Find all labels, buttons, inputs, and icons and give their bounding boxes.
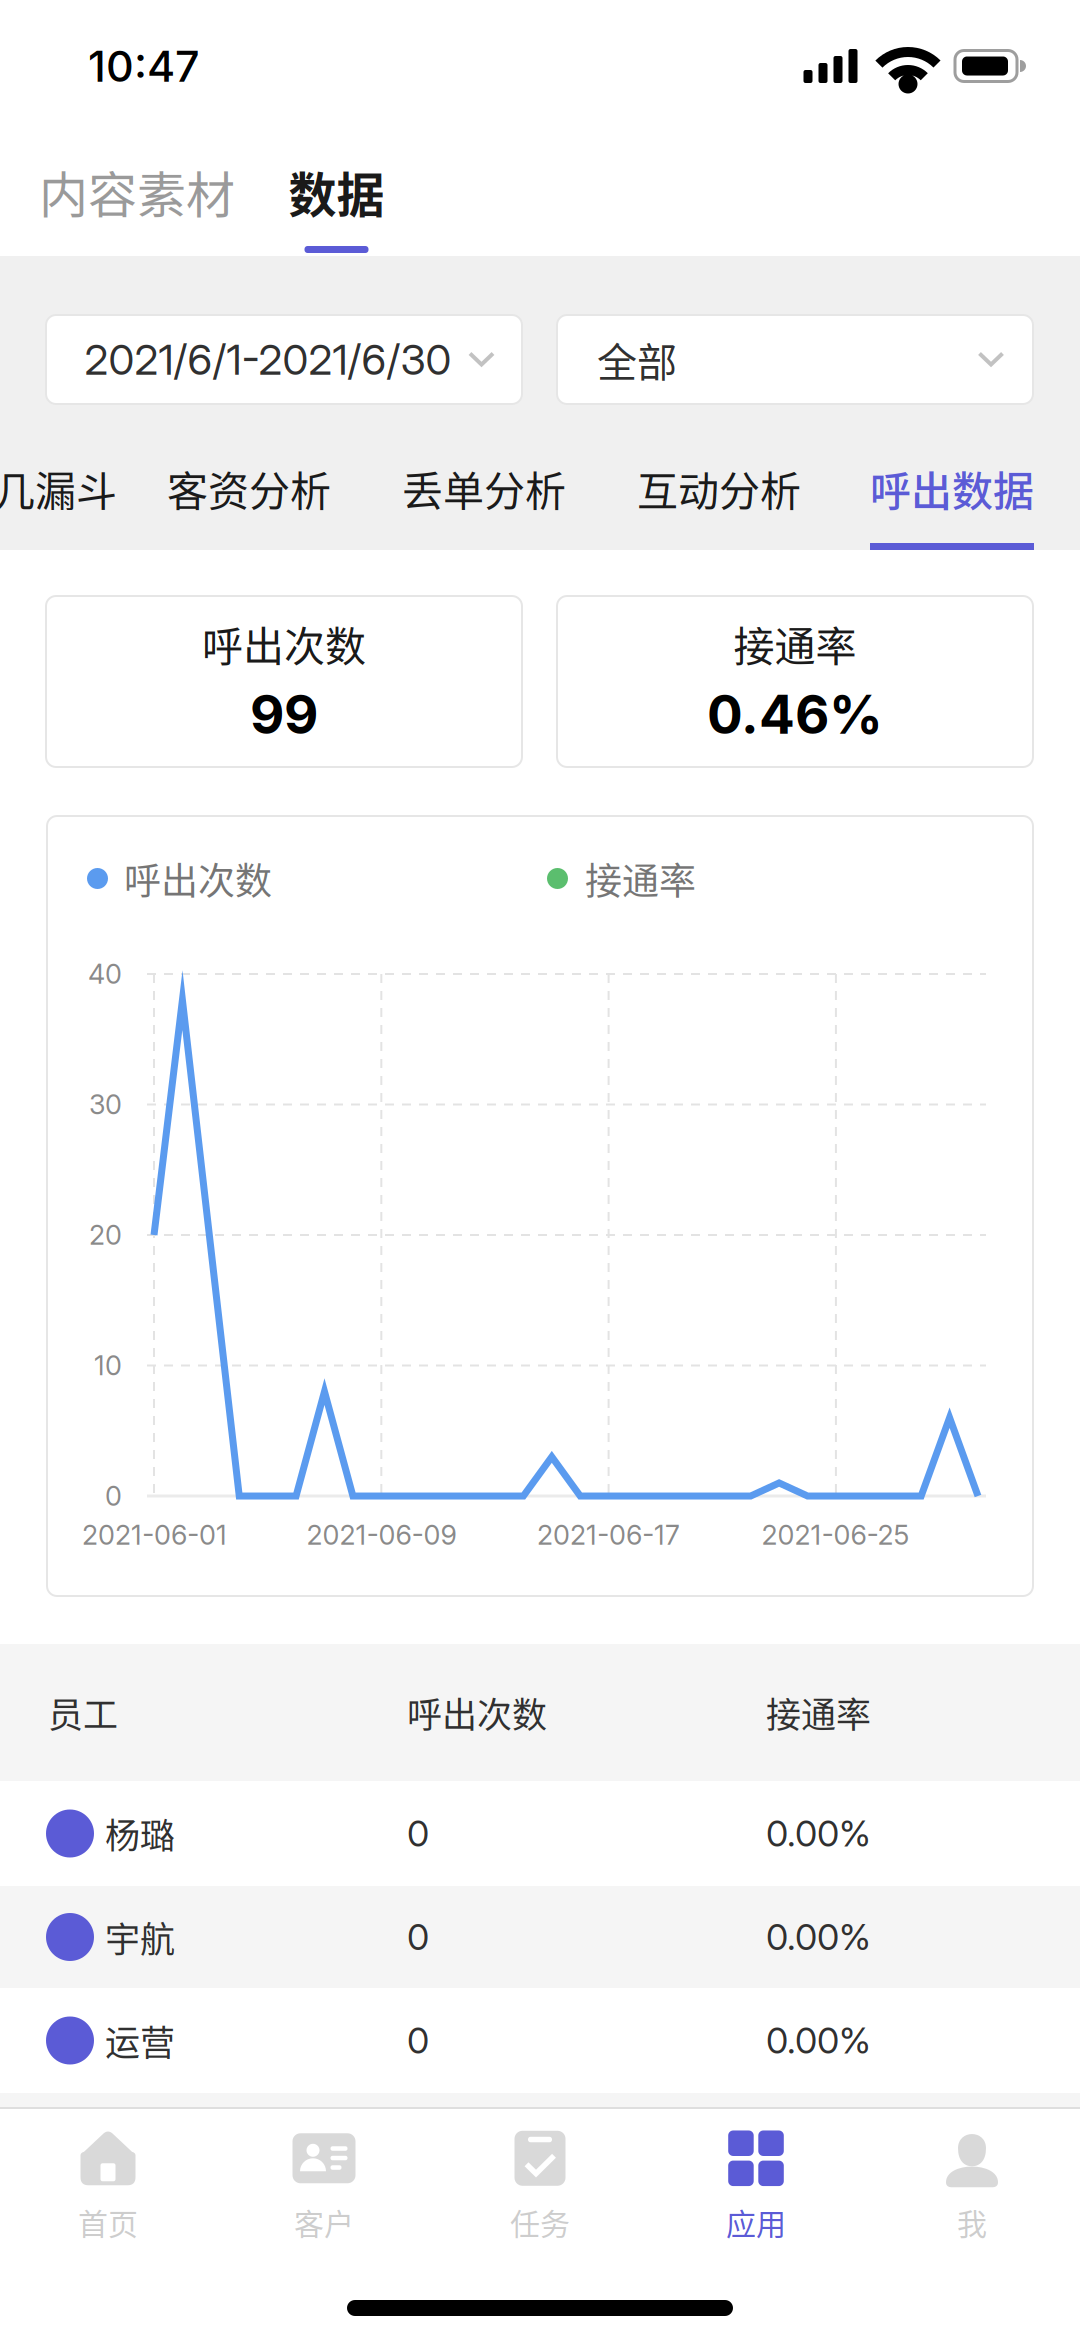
button[interactable]: 互动分析 xyxy=(0,440,164,550)
staticText: 我 xyxy=(957,2200,987,2244)
staticText: 0.00% xyxy=(766,1915,871,1959)
staticText: 客户 xyxy=(294,2200,354,2244)
button[interactable]: 2021/6/1-2021/6/30 xyxy=(46,315,522,404)
button[interactable]: 数据 xyxy=(289,132,384,251)
staticText: 呼出次数 xyxy=(124,852,272,905)
staticText: 2021-06-25 xyxy=(761,1519,909,1551)
button[interactable]: 杨璐 xyxy=(0,1781,1080,1886)
staticText: 几漏斗 xyxy=(0,459,117,518)
staticText: 呼出数据 xyxy=(870,459,1034,518)
staticText: 杨璐 xyxy=(105,1808,175,1859)
button[interactable]: 首页 xyxy=(0,2109,216,2240)
staticText: 数据 xyxy=(288,157,384,226)
button[interactable]: 客资分析 xyxy=(0,440,164,550)
staticText: 互动分析 xyxy=(637,459,801,518)
button[interactable]: 宇航 xyxy=(0,1886,1080,1988)
staticText: 0.00% xyxy=(766,2019,871,2062)
staticText: 运营 xyxy=(105,2015,175,2066)
staticText: 2021-06-01 xyxy=(82,1519,227,1551)
button[interactable]: 我 xyxy=(864,2109,1080,2240)
button[interactable]: 客户 xyxy=(216,2109,432,2240)
staticText: 2021-06-17 xyxy=(537,1519,680,1551)
staticText: 接通率 xyxy=(585,852,696,905)
staticText: 10:47 xyxy=(88,40,200,92)
staticText: 0 xyxy=(105,1480,122,1512)
staticText: 呼出次数 xyxy=(202,614,366,673)
staticText: 2021/6/1-2021/6/30 xyxy=(84,334,451,385)
staticText: 员工 xyxy=(48,1687,118,1738)
staticText: 20 xyxy=(89,1219,122,1251)
staticText: 呼出次数 xyxy=(407,1687,547,1738)
staticText: 接通率 xyxy=(766,1687,871,1738)
staticText: 0.00% xyxy=(766,1812,871,1855)
staticText: 客资分析 xyxy=(167,459,331,518)
staticText: 应用 xyxy=(726,2200,786,2244)
staticText: 全部 xyxy=(597,330,677,388)
staticText: 丢单分析 xyxy=(402,459,566,518)
button[interactable]: 任务 xyxy=(432,2109,648,2240)
staticText: 任务 xyxy=(510,2200,570,2244)
staticText: 99 xyxy=(250,682,318,746)
staticText: 40 xyxy=(88,958,122,990)
staticText: 0 xyxy=(407,2019,429,2062)
staticText: 10 xyxy=(94,1349,122,1382)
staticText: 首页 xyxy=(78,2200,138,2244)
button[interactable]: 内容素材 xyxy=(39,132,231,251)
staticText: 宇航 xyxy=(105,1912,175,1962)
staticText: 接通率 xyxy=(733,614,856,673)
button[interactable]: 丢单分析 xyxy=(0,440,164,550)
button[interactable]: 应用 xyxy=(648,2109,864,2240)
button[interactable]: 全部 xyxy=(557,315,1033,404)
staticText: 0 xyxy=(407,1812,429,1855)
button[interactable]: 呼出数据 xyxy=(0,440,164,550)
button[interactable]: 几漏斗 xyxy=(0,440,123,550)
staticText: 0 xyxy=(407,1915,429,1959)
staticText: 内容素材 xyxy=(39,156,235,227)
button[interactable]: 运营 xyxy=(0,1988,1080,2093)
staticText: 30 xyxy=(89,1088,122,1121)
staticText: 2021-06-09 xyxy=(306,1519,456,1551)
staticText: 0.46% xyxy=(707,682,883,746)
